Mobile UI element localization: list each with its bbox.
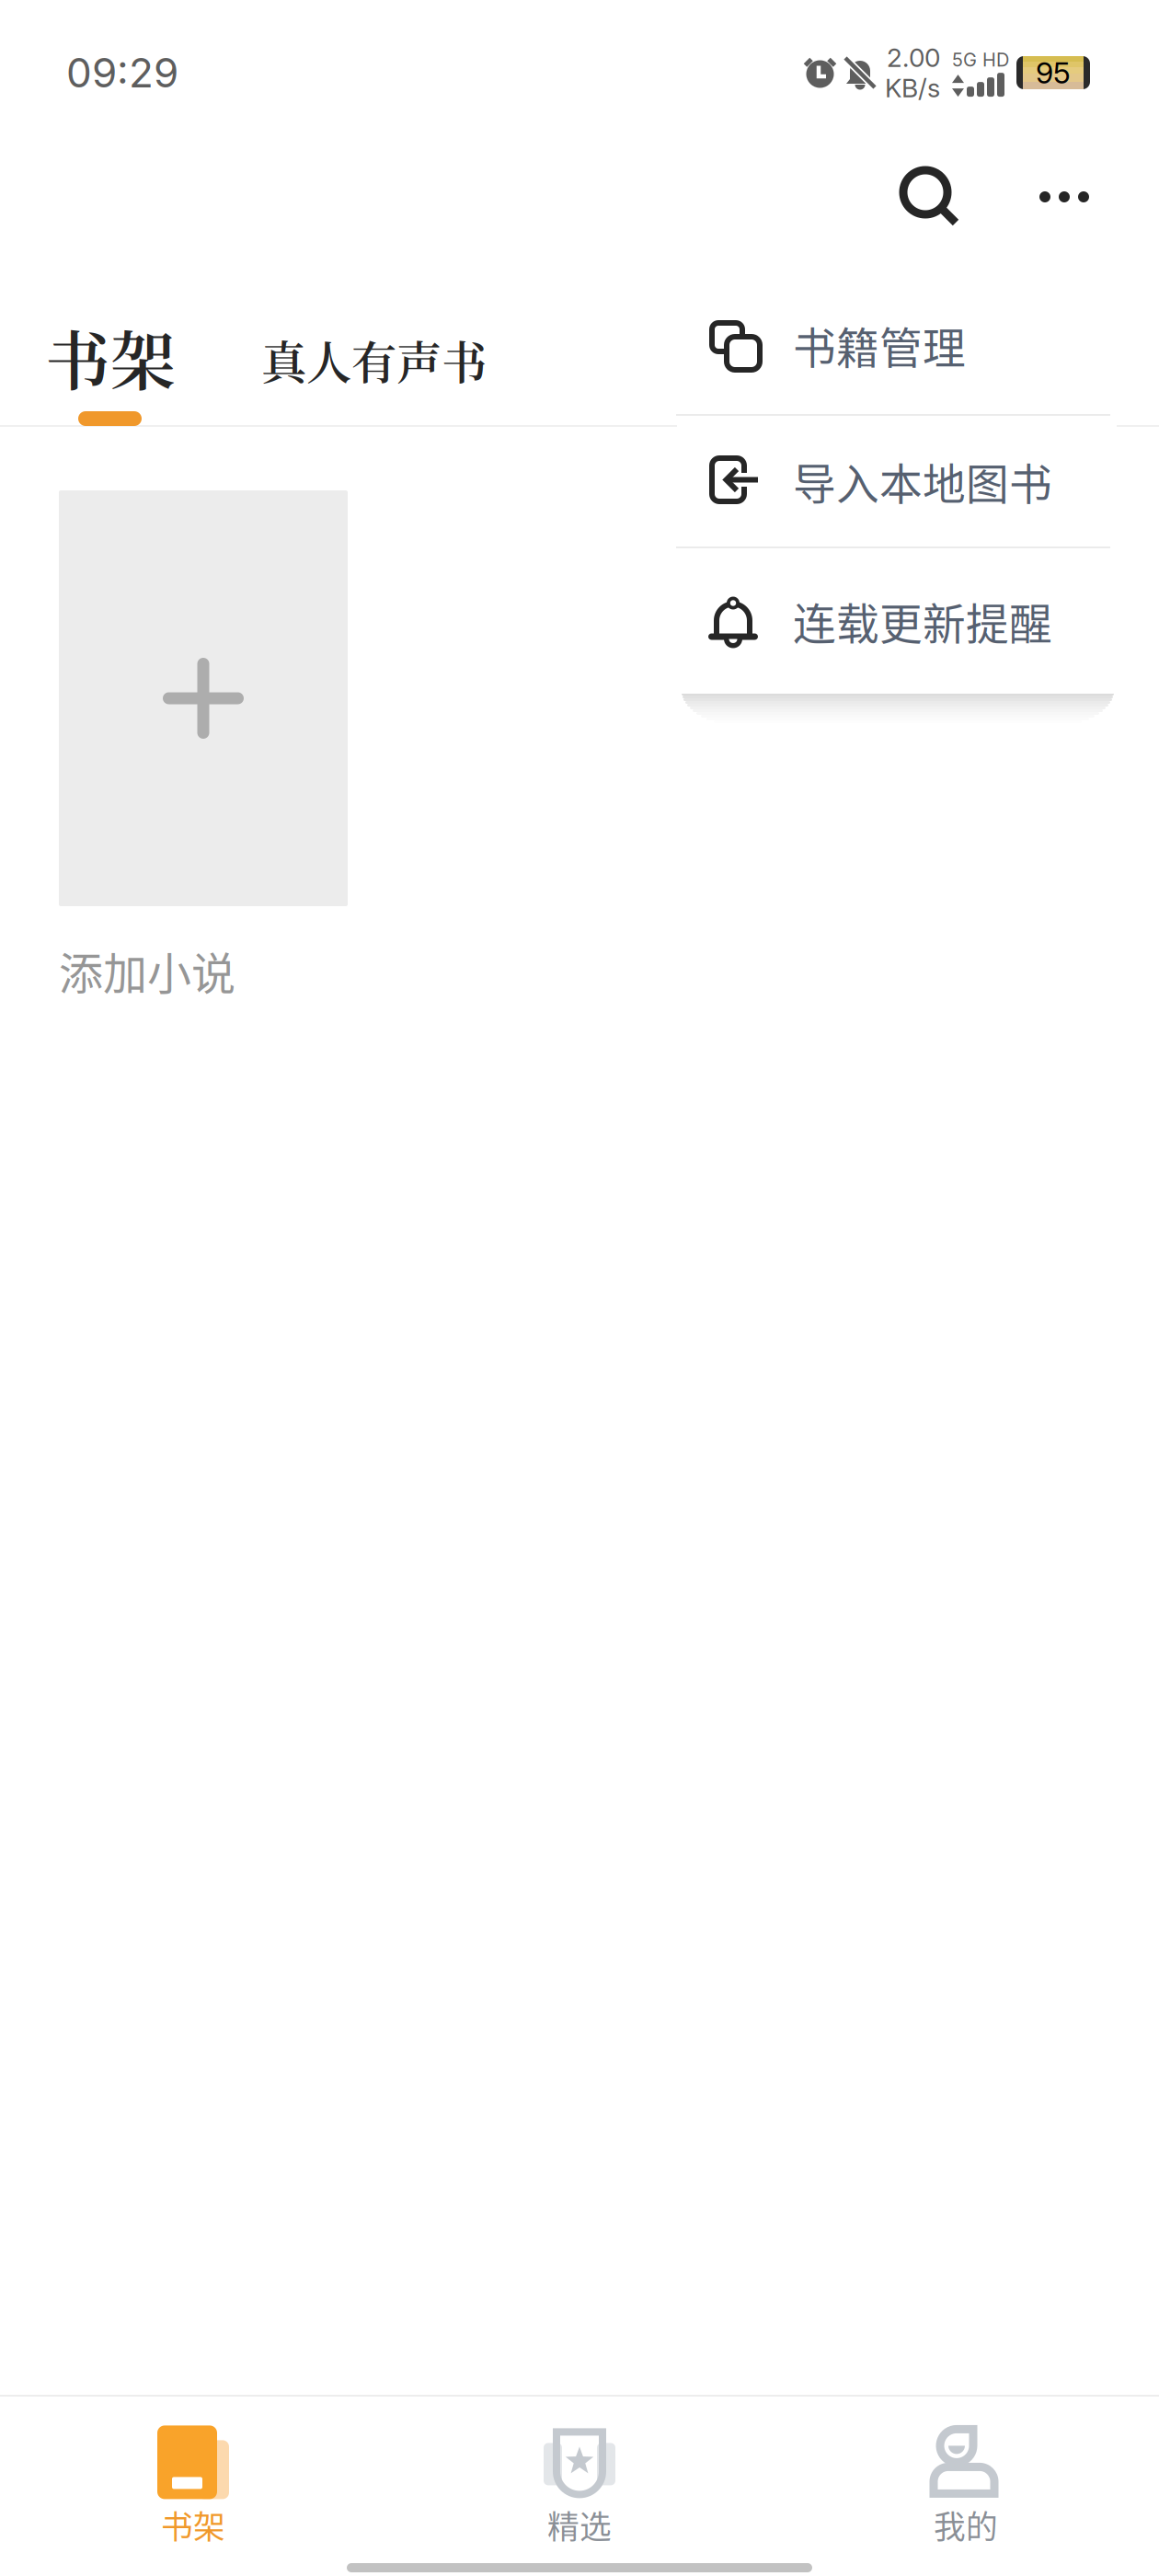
button[interactable]: 导入本地图书 [677, 416, 1117, 546]
staticText: 精选 [547, 2502, 612, 2548]
staticText: 09:29 [66, 48, 178, 97]
staticText: 我的 [934, 2502, 998, 2548]
staticText: 95 [1036, 55, 1071, 90]
button[interactable]: 书籍管理 [677, 276, 1117, 414]
staticText: KB/s [885, 72, 940, 103]
button[interactable]: 更多 [1005, 138, 1123, 256]
button[interactable]: 书架 [0, 302, 229, 412]
staticText: 书架 [45, 310, 176, 404]
staticText: 书籍管理 [793, 314, 966, 376]
button[interactable]: 精选 [386, 2385, 773, 2555]
staticText: 书架 [161, 2502, 225, 2548]
button[interactable]: 书架 [0, 2385, 386, 2555]
button[interactable]: 搜索 [871, 138, 989, 256]
staticText: 真人有声书 [261, 327, 487, 392]
staticText: 导入本地图书 [793, 450, 1052, 512]
button[interactable]: 添加小说 [59, 490, 348, 1002]
staticText: 2.00 [887, 42, 940, 73]
button[interactable]: 我的 [773, 2385, 1159, 2555]
staticText: 5G HD [952, 49, 1009, 71]
staticText: 连载更新提醒 [793, 590, 1052, 652]
button[interactable]: 连载更新提醒 [677, 548, 1117, 694]
button[interactable]: 真人有声书 [261, 314, 519, 406]
staticText: 添加小说 [59, 938, 235, 1002]
